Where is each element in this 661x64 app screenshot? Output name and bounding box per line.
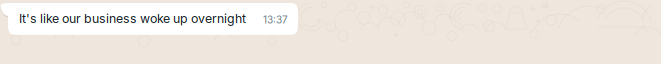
staticText: 13:37 — [263, 14, 288, 26]
staticText: It's like our business woke up overnight — [19, 11, 246, 26]
